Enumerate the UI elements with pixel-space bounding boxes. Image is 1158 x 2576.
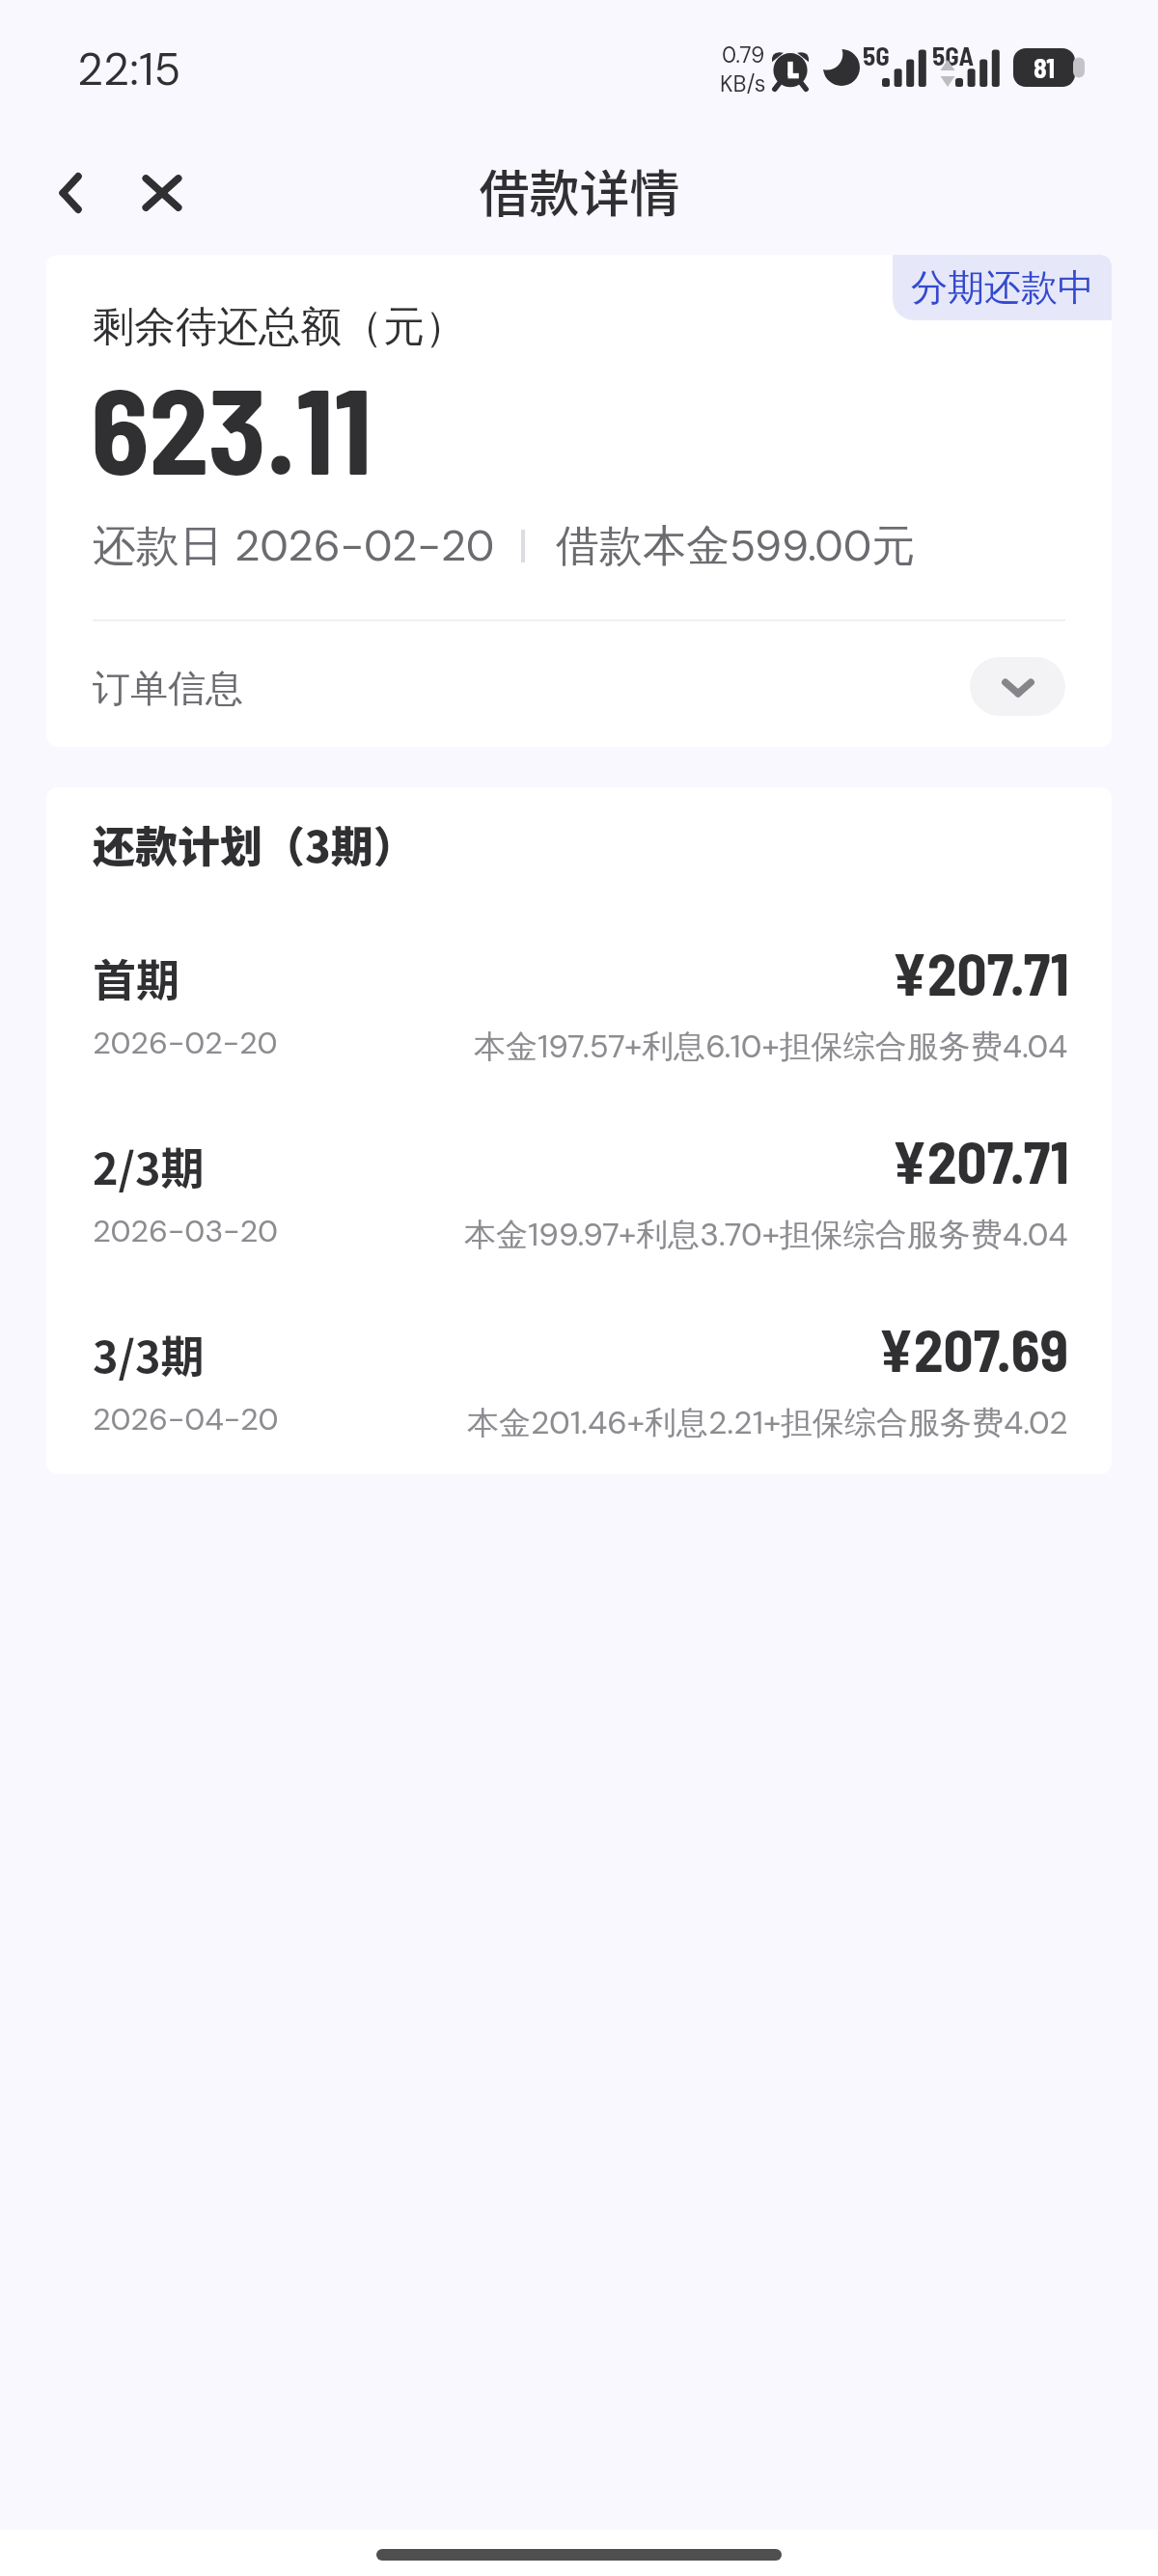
staticText: 0.79: [722, 41, 765, 69]
staticText: 2026-03-20: [93, 1211, 279, 1251]
staticText: 2/3期: [93, 1135, 205, 1197]
staticText: ¥207.69: [878, 1313, 1069, 1384]
staticText: 订单信息: [93, 665, 243, 712]
button[interactable]: Close: [124, 159, 201, 227]
staticText: 本金199.97+利息3.70+担保综合服务费4.04: [464, 1214, 1068, 1255]
staticText: 借款详情: [479, 154, 680, 222]
staticText: 81: [1034, 51, 1056, 84]
staticText: 5GA: [932, 40, 974, 70]
staticText: 2026-04-20: [93, 1399, 279, 1439]
button[interactable]: 3/3期: [46, 1322, 1112, 1474]
button[interactable]: 订单信息: [46, 621, 1112, 747]
staticText: 2026-02-20: [93, 1023, 278, 1063]
staticText: 借款本金599.00元: [556, 517, 916, 574]
staticText: 623.11: [91, 355, 372, 499]
staticText: ¥207.71: [892, 937, 1069, 1007]
staticText: KB/s: [720, 69, 766, 98]
staticText: 剩余待还总额（元）: [93, 301, 466, 353]
staticText: 本金197.57+利息6.10+担保综合服务费4.04: [474, 1026, 1068, 1067]
staticText: 3/3期: [93, 1323, 205, 1385]
button[interactable]: 2/3期: [46, 1134, 1112, 1288]
staticText: 本金201.46+利息2.21+担保综合服务费4.02: [467, 1402, 1068, 1443]
button[interactable]: Back: [33, 159, 110, 227]
staticText: 5G: [863, 40, 890, 70]
staticText: 还款计划（3期）: [93, 813, 416, 875]
staticText: 首期: [93, 946, 180, 1009]
staticText: 分期还款中: [911, 264, 1094, 311]
staticText: 22:15: [77, 41, 181, 98]
button[interactable]: 首期: [46, 945, 1112, 1100]
staticText: 还款日 2026-02-20: [93, 517, 495, 574]
staticText: ¥207.71: [892, 1125, 1069, 1195]
